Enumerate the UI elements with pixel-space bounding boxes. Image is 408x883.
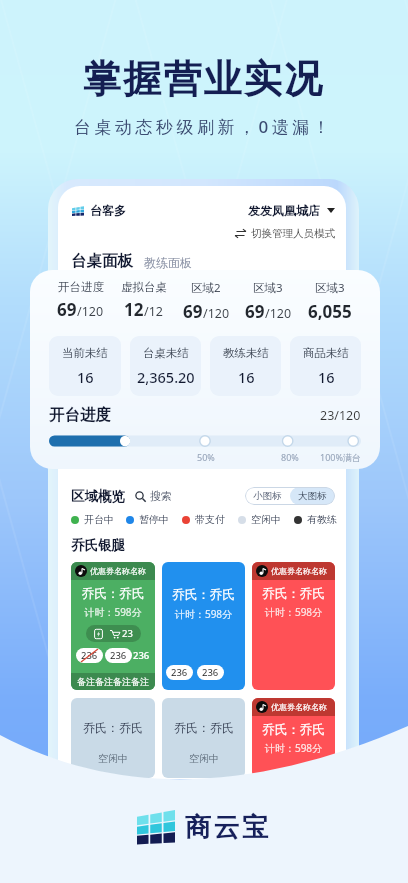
staticText: 小图标 [253,490,282,502]
staticText: 商云宝 [185,811,271,844]
staticText: 12 [124,298,144,321]
staticText: 计时：598分 [71,605,155,619]
staticText: 台客多 [90,203,126,218]
button[interactable]: 乔氏：乔氏 [162,698,245,778]
staticText: 乔氏银腿 [71,537,125,554]
staticText: 计时：598分 [162,607,245,621]
staticText: 台桌动态秒级刷新，0遗漏！ [74,115,334,138]
button[interactable]: 乔氏：乔氏 [162,562,245,690]
button[interactable]: 商品未结 [290,336,361,396]
button[interactable]: 优惠券名称名称 [71,562,155,690]
other: 搜索 [135,491,146,502]
button[interactable]: 大图标 [290,487,335,505]
staticText: 空闲中 [98,752,128,765]
staticText: 乔氏：乔氏 [83,720,143,735]
staticText: 计时：598分 [252,741,335,755]
staticText: 区域概览 [71,488,125,505]
staticText: 16 [318,367,335,387]
staticText: 备注备注备注备注 [77,676,149,687]
button[interactable]: 乔氏：乔氏 [71,698,155,778]
staticText: 乔氏：乔氏 [252,586,335,602]
staticText: 当前未结 [62,346,108,360]
staticText: 乔氏：乔氏 [252,722,335,738]
button[interactable]: 教练未结 [210,336,281,396]
staticText: 大图标 [298,490,327,502]
button[interactable]: 台客多 [72,203,126,218]
staticText: /120 [265,305,292,322]
staticText: 236 [133,649,150,662]
staticText: 乔氏：乔氏 [174,720,234,735]
staticText: 236 [81,649,98,662]
button[interactable]: 当前未结 [49,336,121,396]
staticText: 有教练 [307,513,337,526]
staticText: 23 [122,627,133,640]
staticText: 虚拟台桌 [121,280,167,294]
staticText: 区域3 [315,280,345,296]
button[interactable]: 小图标 [245,487,290,505]
other: 切换 [235,229,246,238]
staticText: 优惠券名称名称 [271,702,327,712]
staticText: 开台中 [84,513,114,526]
staticText: 计时：598分 [252,605,335,619]
staticText: 发发凤凰城店 [248,203,320,218]
staticText: 带支付 [195,513,225,526]
staticText: /120 [77,303,104,320]
button[interactable]: 教练面板 [144,255,192,271]
staticText: 优惠券名称名称 [90,566,146,576]
staticText: 空闲中 [251,513,281,526]
staticText: 236 [202,666,219,679]
staticText: 69 [183,300,203,323]
staticText: 台桌面板 [71,251,133,271]
staticText: 台桌未结 [143,346,189,360]
staticText: 50% [197,451,215,463]
staticText: /120 [203,305,230,322]
staticText: 100%满台 [320,451,361,463]
staticText: 搜索 [150,489,172,503]
staticText: 16 [77,367,94,387]
staticText: 区域2 [191,280,221,296]
staticText: 23/120 [320,407,361,424]
button[interactable]: 优惠券名称名称 [252,562,335,690]
staticText: 区域3 [253,280,283,296]
staticText: 开台进度 [58,280,104,294]
staticText: 空闲中 [189,752,219,765]
staticText: 掌握营业实况 [83,55,325,103]
staticText: 236 [171,666,188,679]
staticText: /12 [144,303,163,320]
button[interactable]: 切换 [235,227,335,240]
staticText: 80% [281,451,299,463]
staticText: 教练未结 [223,346,269,360]
staticText: 乔氏：乔氏 [71,586,155,602]
staticText: 乔氏：乔氏 [162,587,245,603]
staticText: 6,055 [308,300,352,323]
staticText: 优惠券名称名称 [271,566,327,576]
staticText: 暂停中 [139,513,169,526]
staticText: 开台进度 [49,405,111,425]
staticText: 16 [238,367,255,387]
staticText: 69 [57,298,77,321]
staticText: 教练面板 [144,255,192,270]
button[interactable]: 发发凤凰城店 [248,203,335,218]
staticText: 69 [245,300,265,323]
button[interactable]: 优惠券名称名称 [252,698,335,778]
staticText: 236 [110,649,127,662]
staticText: 切换管理人员模式 [251,227,335,240]
button[interactable]: 台桌未结 [130,336,201,396]
staticText: 商品未结 [303,346,349,360]
staticText: 2,365.20 [137,367,195,387]
button[interactable]: 台桌面板 [71,251,133,271]
button[interactable]: 搜索 [135,489,172,503]
